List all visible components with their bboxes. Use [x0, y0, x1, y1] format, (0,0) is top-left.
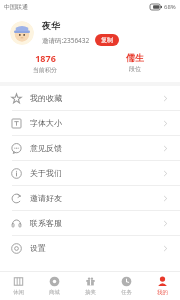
staticText: 我的收藏 [30, 93, 62, 103]
button[interactable]: 关于我们 [0, 161, 180, 185]
button[interactable]: 邀请好友 [0, 186, 180, 210]
staticText: 我的 [157, 289, 168, 296]
staticText: 关于我们 [30, 168, 62, 178]
button[interactable]: 任务 [108, 272, 144, 300]
staticText: 休闲 [13, 289, 24, 296]
button[interactable]: Profile avatar [10, 20, 170, 46]
button[interactable]: 休闲 [0, 272, 36, 300]
staticText: 商城 [49, 289, 60, 296]
staticText: 字体大小 [30, 118, 62, 128]
staticText: 邀请好友 [30, 193, 62, 203]
staticText: 段位 [129, 65, 141, 73]
button[interactable]: 我的 [144, 272, 180, 300]
staticText: 意见反馈 [30, 143, 62, 153]
button[interactable]: 1876 [0, 52, 90, 74]
button[interactable]: 抽奖 [72, 272, 108, 300]
staticText: 儒生 [126, 52, 144, 63]
staticText: 68% [164, 3, 176, 11]
button[interactable]: 意见反馈 [0, 136, 180, 160]
button[interactable]: 我的收藏 [0, 86, 180, 110]
button[interactable]: 商城 [36, 272, 72, 300]
staticText: 1876 [35, 52, 56, 64]
staticText: 中国联通 [4, 3, 28, 11]
staticText: 设置 [30, 243, 46, 253]
staticText: 抽奖 [85, 289, 96, 296]
staticText: 任务 [121, 289, 132, 296]
staticText: 复制 [101, 36, 113, 44]
button[interactable]: 复制 [95, 34, 119, 46]
button[interactable]: 设置 [0, 236, 180, 260]
staticText: 邀请码:2356432 [42, 36, 90, 45]
button[interactable]: 联系客服 [0, 211, 180, 235]
staticText: 当前积分 [33, 66, 57, 74]
button[interactable]: 儒生 [90, 52, 180, 73]
staticText: 夜华 [42, 20, 60, 31]
staticText: 联系客服 [30, 218, 62, 228]
button[interactable]: 字体大小 [0, 111, 180, 135]
button[interactable]: Profile avatar [10, 21, 34, 45]
